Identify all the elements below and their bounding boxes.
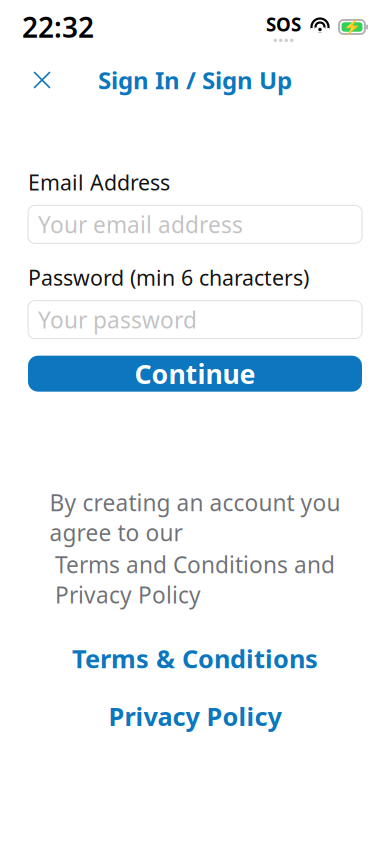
button[interactable]: Continue: [28, 356, 362, 392]
staticText: Email Address: [28, 168, 170, 196]
staticText: ⚡: [343, 19, 361, 35]
staticText: By creating an account you agree to our: [49, 487, 340, 547]
staticText: Terms and Conditions and Privacy Policy: [55, 549, 335, 610]
staticText: Terms & Conditions: [72, 642, 318, 675]
button[interactable]: Close: [20, 58, 64, 102]
staticText: Continue: [134, 356, 255, 391]
staticText: Your email address: [38, 209, 243, 239]
button[interactable]: Your password: [28, 301, 362, 339]
staticText: Your password: [38, 305, 197, 335]
staticText: 22:32: [22, 8, 94, 46]
button[interactable]: Privacy Policy: [28, 693, 362, 739]
button[interactable]: Sign In / Sign Up: [98, 64, 292, 96]
staticText: Privacy Policy: [108, 699, 281, 733]
staticText: Password (min 6 characters): [28, 263, 309, 292]
button[interactable]: Terms & Conditions: [28, 636, 362, 681]
button[interactable]: Your email address: [28, 205, 362, 243]
staticText: Sign In / Sign Up: [98, 64, 292, 96]
staticText: SOS: [266, 12, 301, 37]
